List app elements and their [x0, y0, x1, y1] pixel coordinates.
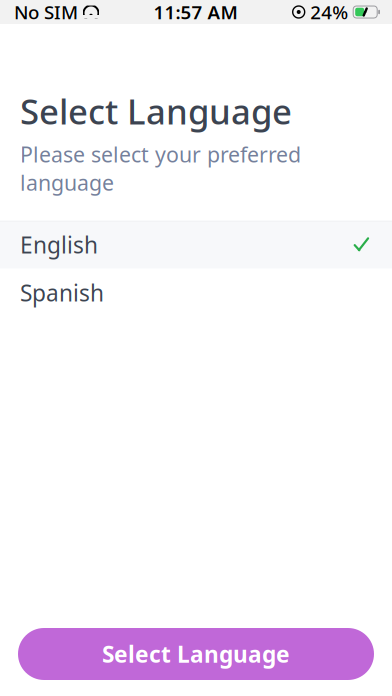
button[interactable]: English [0, 221, 392, 269]
staticText: Select Language [20, 88, 292, 134]
button[interactable]: Select Language [18, 628, 374, 680]
staticText: Please select your preferred language [20, 140, 301, 197]
staticText: Spanish [20, 278, 104, 308]
staticText: No SIM [14, 0, 78, 24]
staticText: 11:57 AM [154, 0, 238, 24]
staticText: 24% [310, 0, 348, 24]
staticText: English [20, 230, 98, 260]
button[interactable]: Spanish [0, 269, 392, 317]
staticText: Select Language [102, 639, 290, 669]
